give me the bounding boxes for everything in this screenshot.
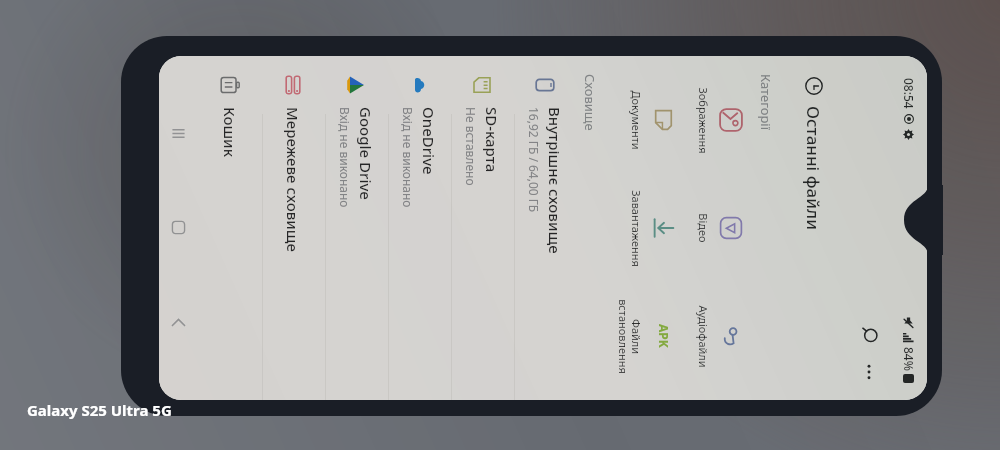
button[interactable]: Кошик xyxy=(199,56,262,400)
button[interactable]: Google Drive xyxy=(325,56,388,400)
staticText: 16,92 ГБ / 64,00 ГБ xyxy=(526,107,542,213)
button[interactable]: Back xyxy=(159,275,199,370)
button[interactable]: APK xyxy=(616,282,677,390)
staticText: Сховище xyxy=(581,74,599,131)
button[interactable]: Recent files xyxy=(802,74,826,98)
staticText: 08:54 xyxy=(901,78,917,109)
staticText: Категорії xyxy=(757,74,775,131)
staticText: Google Drive xyxy=(356,107,376,200)
staticText: Зображення xyxy=(696,87,711,154)
staticText: OneDrive xyxy=(419,107,439,175)
button[interactable]: SD-карта xyxy=(451,56,514,400)
button[interactable]: OneDrive xyxy=(388,56,451,400)
button[interactable]: Документи xyxy=(629,66,677,174)
button[interactable]: Внутрішнє сховище xyxy=(514,56,577,400)
button[interactable]: Recent apps xyxy=(159,86,199,180)
staticText: SD-карта xyxy=(482,107,502,173)
button[interactable]: Home xyxy=(159,180,199,275)
staticText: Вхід не виконано xyxy=(337,107,353,208)
staticText: Внутрішнє сховище xyxy=(545,107,565,254)
staticText: Кошик xyxy=(220,107,240,157)
staticText: APK xyxy=(656,324,672,348)
button[interactable]: Мережеве сховище xyxy=(262,56,325,400)
button[interactable]: Аудіофайли xyxy=(696,282,744,390)
staticText: 84% xyxy=(901,347,917,371)
staticText: Вхід не виконано xyxy=(400,107,416,208)
button[interactable]: Завантаження xyxy=(629,174,677,282)
button[interactable]: Зображення xyxy=(696,66,744,174)
staticText: Відео xyxy=(696,213,711,243)
staticText: Файли встановлення xyxy=(616,299,644,374)
button[interactable]: More options xyxy=(851,354,887,390)
button[interactable]: Search xyxy=(849,314,889,354)
staticText: Мережеве сховище xyxy=(283,107,303,252)
staticText: Завантаження xyxy=(629,190,644,267)
button[interactable]: Відео xyxy=(696,174,744,282)
staticText: Документи xyxy=(629,90,644,150)
staticText: Аудіофайли xyxy=(696,305,711,368)
staticText: Galaxy S25 Ultra 5G xyxy=(27,400,172,420)
staticText: Останні файли xyxy=(802,106,825,231)
staticText: Не вставлено xyxy=(463,107,479,186)
